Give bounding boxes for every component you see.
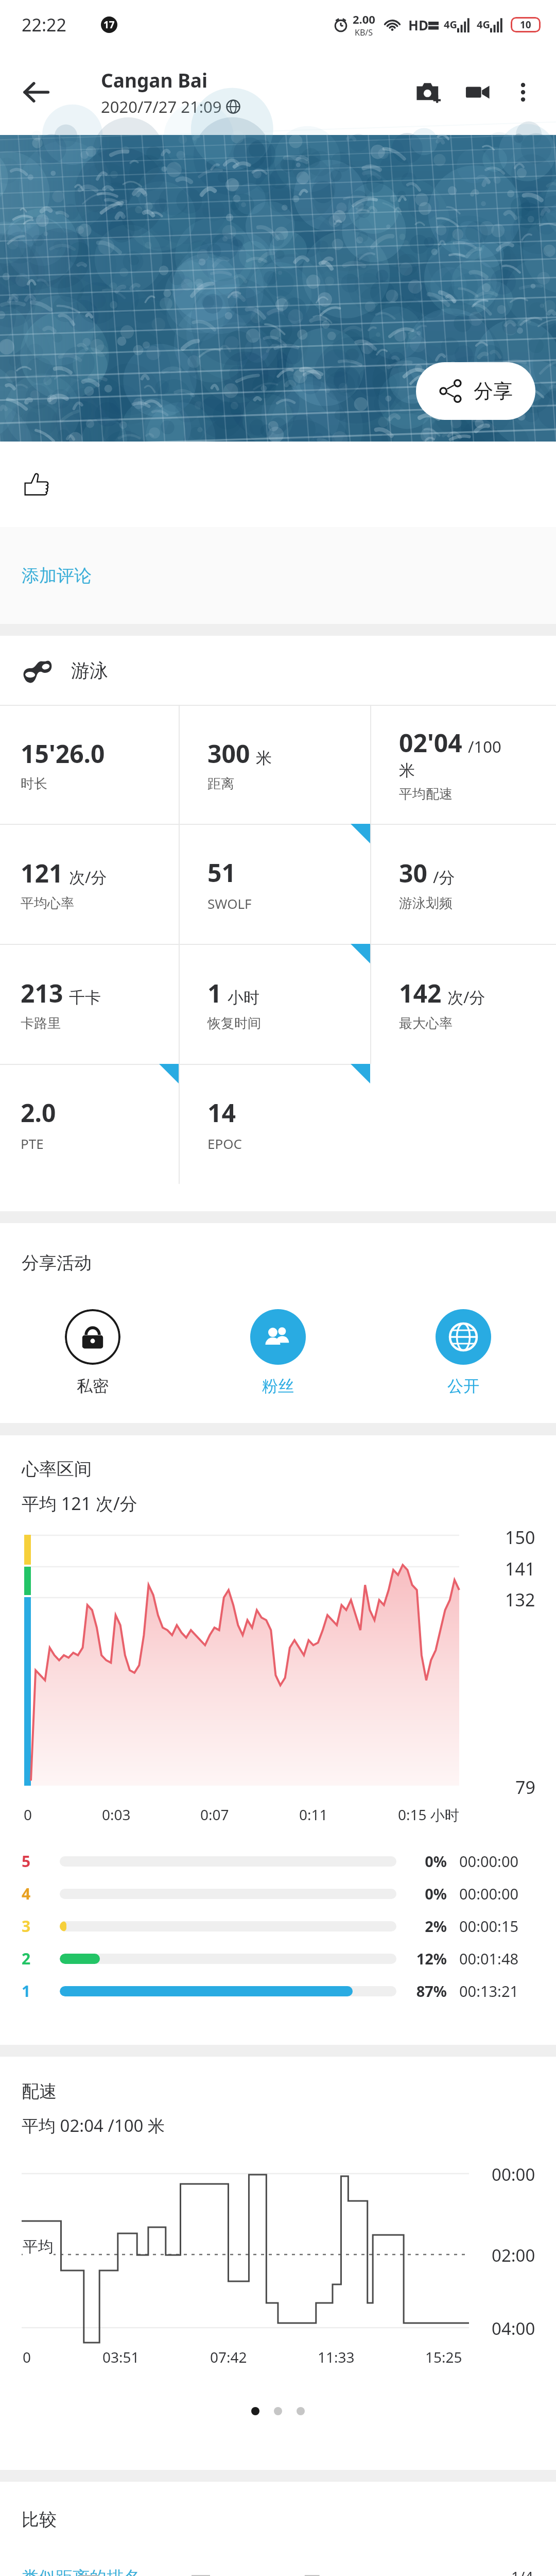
staticText: KB/S	[355, 27, 373, 38]
staticText: 4G	[444, 18, 457, 31]
staticText: 类似距离的排名	[22, 2567, 141, 2576]
staticText: PTE	[21, 1134, 44, 1153]
staticText: 30	[399, 856, 427, 890]
staticText: 87%	[410, 1981, 447, 2001]
staticText: 私密	[77, 1376, 109, 1396]
staticText: 公开	[447, 1376, 479, 1396]
staticText: 0%	[410, 1851, 447, 1871]
staticText: 121	[21, 856, 63, 890]
staticText: 2020/7/27 21:09	[101, 96, 222, 117]
staticText: /分	[433, 866, 455, 888]
staticText: 00:00:00	[459, 1884, 535, 1904]
staticText: 4	[22, 1883, 60, 1904]
staticText: 142	[399, 976, 442, 1010]
staticText: 小时	[228, 988, 259, 1008]
staticText: 150	[505, 1526, 535, 1549]
staticText: 0	[24, 1805, 32, 1824]
staticText: 分享活动	[22, 1252, 92, 1274]
staticText: 2	[22, 1948, 60, 1969]
staticText: 132	[505, 1588, 535, 1612]
staticText: 00:13:21	[459, 1981, 535, 2001]
button[interactable]: More options	[502, 72, 544, 113]
staticText: 213	[21, 976, 63, 1010]
staticText: 0:11	[299, 1805, 328, 1824]
button[interactable]: 粉丝	[185, 1309, 371, 1396]
staticText: 4G	[477, 18, 490, 31]
staticText: 距离	[207, 775, 234, 792]
staticText: 300	[207, 737, 250, 770]
staticText: 1	[22, 1980, 60, 2002]
staticText: 1/4	[511, 2567, 533, 2576]
staticText: HD	[408, 16, 428, 34]
staticText: 分享	[474, 379, 513, 403]
button[interactable]: 私密	[0, 1309, 185, 1396]
staticText: 米	[399, 760, 415, 781]
staticText: SWOLF	[207, 894, 252, 912]
staticText: 平均	[23, 2237, 54, 2257]
staticText: 5	[22, 1851, 60, 1872]
staticText: 次/分	[447, 986, 485, 1008]
staticText: 10	[520, 18, 531, 31]
staticText: 00:00	[492, 2163, 535, 2186]
staticText: 卡路里	[21, 1015, 61, 1032]
staticText: 0	[23, 2347, 31, 2367]
button[interactable]: Like	[12, 460, 62, 509]
button[interactable]: Back	[10, 66, 62, 118]
staticText: 11:33	[318, 2347, 355, 2367]
button[interactable]: Add video	[453, 67, 502, 117]
button[interactable]: 分享	[416, 362, 535, 420]
staticText: 15:25	[425, 2347, 462, 2367]
staticText: 02:00	[492, 2244, 535, 2267]
button[interactable]: Add photo	[404, 67, 453, 117]
staticText: EPOC	[207, 1134, 242, 1153]
staticText: 次/分	[69, 866, 107, 888]
staticText: /100	[468, 736, 501, 757]
staticText: 配速	[22, 2080, 57, 2103]
staticText: 恢复时间	[207, 1015, 261, 1032]
staticText: 比较	[22, 2509, 57, 2531]
staticText: 心率区间	[22, 1458, 92, 1480]
staticText: 平均 121 次/分	[22, 1492, 137, 1515]
staticText: 15'26.0	[21, 737, 105, 770]
staticText: 添加评论	[22, 565, 92, 587]
staticText: 游泳	[71, 659, 108, 682]
staticText: 2.0	[21, 1096, 56, 1129]
staticText: 千卡	[69, 988, 101, 1008]
staticText: 粉丝	[262, 1376, 294, 1396]
staticText: 14	[207, 1096, 236, 1129]
staticText: 22:22	[22, 13, 66, 37]
staticText: 0:03	[102, 1805, 131, 1824]
staticText: 平均 02:04 /100 米	[22, 2114, 165, 2137]
staticText: 04:00	[492, 2317, 535, 2340]
staticText: 00:01:48	[459, 1948, 535, 1969]
staticText: 游泳划频	[399, 895, 453, 912]
staticText: 平均配速	[399, 786, 453, 803]
staticText: Cangan Bai	[101, 67, 208, 93]
staticText: 02'04	[399, 726, 462, 759]
staticText: 米	[256, 748, 272, 768]
staticText: 79	[515, 1775, 535, 1799]
staticText: 12%	[410, 1948, 447, 1969]
staticText: 2%	[410, 1916, 447, 1936]
staticText: 17	[103, 18, 115, 31]
staticText: 00:00:15	[459, 1916, 535, 1936]
button[interactable]: 类似距离的排名	[0, 2567, 556, 2576]
staticText: 0:15 小时	[398, 1805, 459, 1824]
staticText: 最大心率	[399, 1015, 453, 1032]
staticText: 2.00	[353, 11, 375, 27]
button[interactable]: 添加评论	[0, 527, 556, 624]
staticText: 0%	[410, 1884, 447, 1904]
button[interactable]: 公开	[371, 1309, 556, 1396]
staticText: 1	[207, 976, 222, 1010]
staticText: 07:42	[210, 2347, 247, 2367]
staticText: 0:07	[200, 1805, 229, 1824]
staticText: 03:51	[102, 2347, 140, 2367]
staticText: 141	[505, 1557, 535, 1581]
staticText: 3	[22, 1916, 60, 1937]
staticText: 时长	[21, 775, 47, 792]
staticText: 平均心率	[21, 895, 74, 912]
staticText: 51	[207, 856, 236, 889]
staticText: 00:00:00	[459, 1851, 535, 1871]
